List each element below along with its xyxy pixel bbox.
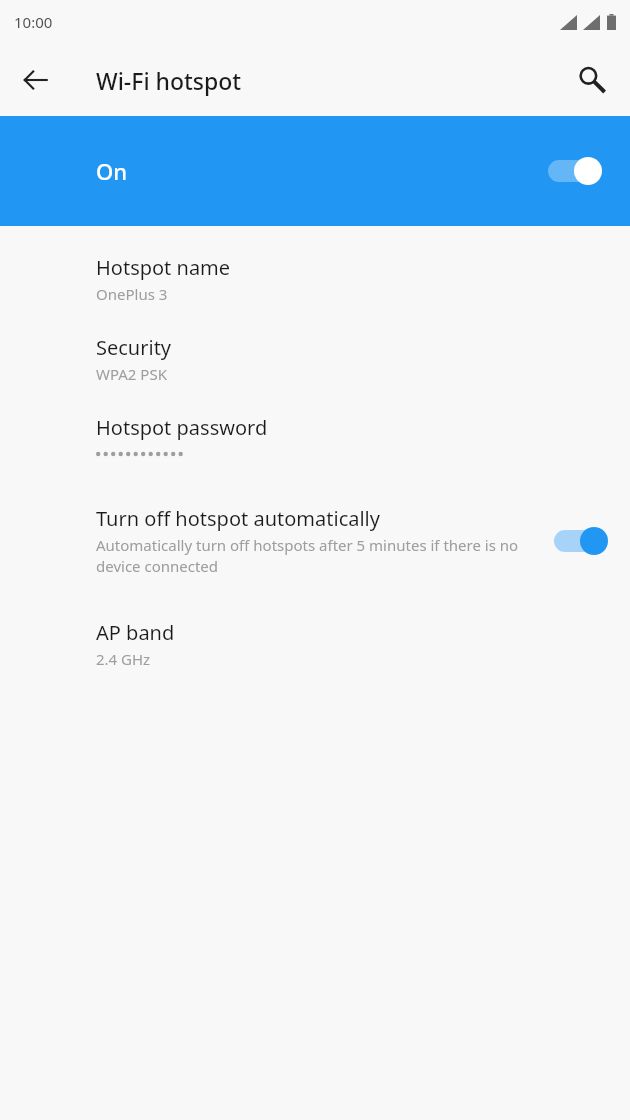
staticText: 2.4 GHz — [96, 649, 151, 669]
staticText: AP band — [96, 619, 175, 646]
staticText: Wi-Fi hotspot — [96, 65, 242, 96]
staticText: 10:00 — [14, 12, 53, 32]
button[interactable]: Hotspot password — [0, 400, 630, 475]
staticText: Hotspot password — [96, 414, 268, 441]
staticText: Hotspot name — [96, 254, 231, 281]
button[interactable]: Security — [0, 320, 630, 400]
button[interactable]: AP band — [0, 605, 630, 685]
button[interactable]: Turn off hotspot automatically — [0, 493, 630, 591]
staticText: WPA2 PSK — [96, 364, 167, 384]
staticText: Security — [96, 334, 172, 361]
button[interactable]: Search — [566, 54, 618, 106]
staticText: On — [96, 156, 128, 186]
button[interactable]: Hotspot name — [0, 240, 630, 320]
button[interactable]: Back — [10, 54, 62, 106]
staticText: OnePlus 3 — [96, 284, 168, 304]
staticText: Turn off hotspot automatically — [96, 505, 380, 532]
staticText: Automatically turn off hotspots after 5 … — [96, 535, 546, 577]
button[interactable]: On — [0, 116, 630, 226]
